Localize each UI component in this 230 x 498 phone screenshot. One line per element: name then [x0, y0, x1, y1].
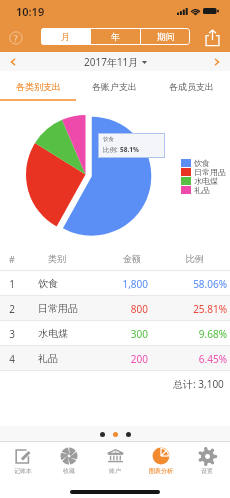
staticText: 礼品	[38, 352, 105, 365]
button[interactable]: 账户	[92, 442, 138, 480]
staticText: 金额	[90, 253, 174, 264]
staticText: #	[0, 253, 24, 265]
staticText: 饮食	[103, 136, 114, 143]
staticText: 日常用品	[194, 167, 226, 176]
button[interactable]: 1	[0, 271, 230, 296]
staticText: 日常用品	[38, 302, 105, 315]
staticText: ?	[14, 33, 18, 44]
staticText: 2	[0, 302, 24, 316]
staticText: 1,800	[105, 277, 148, 291]
button[interactable]: 3	[0, 321, 230, 346]
button[interactable]: Previous month	[5, 54, 21, 70]
staticText: 期间	[157, 31, 175, 42]
button[interactable]: 4	[0, 346, 230, 371]
staticText: 礼品	[194, 185, 210, 194]
staticText: 各账户支出	[92, 81, 137, 92]
staticText: 10:19	[16, 4, 45, 19]
staticText: 6.45%	[148, 352, 227, 366]
button[interactable]: 期间	[141, 28, 190, 45]
staticText: 9.68%	[148, 327, 227, 341]
staticText: 总计: 3,100	[173, 377, 224, 391]
button[interactable]: Next month	[209, 54, 225, 70]
button[interactable]: 2	[0, 296, 230, 321]
staticText: 记账本	[14, 467, 32, 475]
button[interactable]: 图表分析	[138, 442, 184, 480]
staticText: 各成员支出	[169, 81, 214, 92]
staticText: 设置	[201, 467, 213, 475]
staticText: 比例	[174, 253, 215, 264]
staticText: 水电煤	[194, 176, 218, 185]
staticText: 饮食	[38, 277, 105, 290]
staticText: 1	[0, 277, 24, 291]
button[interactable]: 收藏	[46, 442, 92, 480]
staticText: 4	[0, 352, 24, 366]
staticText: 图表分析	[149, 467, 173, 475]
button[interactable]: 月	[41, 28, 90, 45]
staticText: 收藏	[63, 467, 75, 475]
staticText: 58.1%	[120, 145, 139, 154]
button[interactable]: 年	[91, 28, 140, 45]
button[interactable]: 各账户支出	[76, 71, 153, 101]
staticText: 比例:	[103, 145, 120, 154]
staticText: 300	[105, 327, 148, 341]
staticText: 各类别支出	[16, 81, 61, 92]
button[interactable]: 2017年11月	[84, 55, 147, 69]
button[interactable]: 各成员支出	[153, 71, 230, 101]
staticText: 800	[105, 302, 148, 316]
staticText: 25.81%	[148, 302, 227, 316]
button[interactable]: Help	[6, 28, 26, 48]
staticText: 月	[61, 31, 70, 42]
staticText: 3	[0, 327, 24, 341]
staticText: 账户	[109, 467, 121, 475]
button[interactable]: 记账本	[0, 442, 46, 480]
button[interactable]: Share	[203, 28, 222, 47]
staticText: 水电煤	[38, 327, 105, 340]
staticText: 200	[105, 352, 148, 366]
staticText: 类别	[24, 253, 90, 264]
staticText: 饮食	[194, 158, 210, 167]
button[interactable]: 各类别支出	[0, 71, 76, 101]
button[interactable]: 设置	[184, 442, 230, 480]
staticText: 58.06%	[148, 277, 227, 291]
staticText: 年	[111, 31, 120, 42]
staticText: 2017年11月	[84, 55, 139, 69]
